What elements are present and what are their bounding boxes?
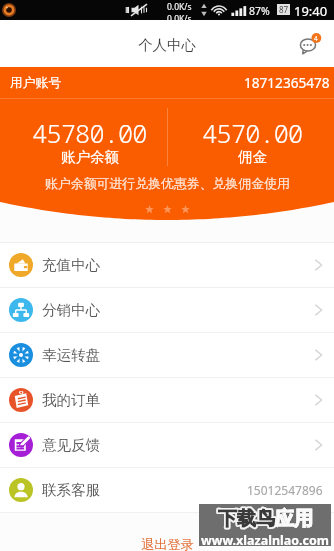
staticText: 用户账号 bbox=[10, 75, 62, 91]
staticText: 退出登录 bbox=[141, 536, 194, 551]
button[interactable]: 充值中心 bbox=[0, 243, 334, 288]
button[interactable]: 我的订单 bbox=[0, 378, 334, 423]
staticText: 账户余额 bbox=[61, 148, 119, 166]
staticText: 下载鸟 bbox=[218, 507, 275, 531]
staticText: 个人中心 bbox=[138, 36, 196, 54]
staticText: 意见反馈 bbox=[42, 436, 101, 454]
button[interactable]: 联系客服 bbox=[0, 468, 334, 513]
staticText: 应用 bbox=[275, 507, 313, 531]
button[interactable]: Messages bbox=[300, 33, 321, 54]
staticText: 佣金 bbox=[238, 148, 267, 166]
staticText: 0.0K/s bbox=[167, 13, 192, 21]
staticText: 我的订单 bbox=[42, 391, 101, 409]
staticText: 应用 bbox=[275, 507, 313, 531]
staticText: 账户余额可进行兑换优惠券、兑换佣金使用 bbox=[45, 176, 290, 192]
staticText: 下载鸟 bbox=[218, 507, 275, 531]
staticText: 87 bbox=[279, 4, 289, 15]
staticText: www.xlazalnlao.com bbox=[201, 532, 330, 546]
staticText: 87% bbox=[249, 4, 270, 18]
button[interactable]: 意见反馈 bbox=[0, 423, 334, 468]
staticText: 分销中心 bbox=[42, 301, 101, 319]
staticText: 19:40 bbox=[294, 2, 328, 20]
staticText: 0.0K/s bbox=[167, 1, 192, 13]
staticText: 联系客服 bbox=[42, 481, 101, 499]
staticText: 4570.00 bbox=[202, 115, 303, 150]
button[interactable]: 分销中心 bbox=[0, 288, 334, 333]
staticText: 4 bbox=[314, 34, 318, 43]
button[interactable]: 退出登录 bbox=[0, 536, 334, 551]
staticText: 充值中心 bbox=[42, 256, 101, 274]
staticText: 45780.00 bbox=[32, 115, 147, 150]
button[interactable]: 幸运转盘 bbox=[0, 333, 334, 378]
staticText: 15012547896 bbox=[247, 482, 323, 498]
staticText: 18712365478 bbox=[244, 73, 330, 92]
staticText: 幸运转盘 bbox=[42, 346, 101, 364]
